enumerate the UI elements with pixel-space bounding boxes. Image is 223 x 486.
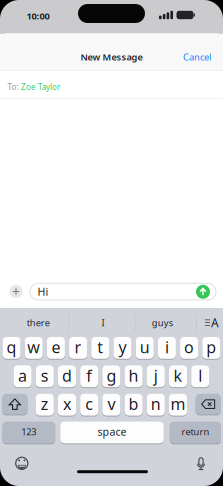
staticText: j: [154, 365, 158, 386]
staticText: t: [97, 336, 103, 358]
button[interactable]: j: [147, 365, 165, 388]
staticText: p: [206, 336, 216, 358]
button[interactable]: s: [36, 365, 54, 388]
staticText: n: [151, 393, 161, 414]
staticText: u: [140, 336, 150, 358]
button[interactable]: e: [47, 336, 65, 359]
button[interactable]: q: [2, 336, 20, 359]
button[interactable]: r: [69, 336, 87, 359]
staticText: m: [170, 393, 185, 414]
button[interactable]: x: [58, 393, 76, 416]
button[interactable]: 123: [2, 421, 55, 444]
button[interactable]: Hi: [30, 283, 216, 300]
staticText: d: [62, 365, 72, 386]
button[interactable]: t: [91, 336, 109, 359]
staticText: s: [41, 365, 49, 386]
button[interactable]: v: [102, 393, 120, 416]
staticText: r: [75, 336, 82, 358]
button[interactable]: Cancel: [183, 51, 211, 63]
button[interactable]: w: [25, 336, 43, 359]
staticText: there: [27, 316, 50, 329]
button[interactable]: Shift: [2, 393, 27, 415]
staticText: y: [118, 336, 126, 358]
button[interactable]: h: [125, 365, 143, 388]
button[interactable]: l: [191, 365, 209, 388]
button[interactable]: o: [180, 336, 198, 359]
button[interactable]: p: [202, 336, 220, 359]
button[interactable]: Delete: [196, 393, 221, 415]
staticText: g: [106, 365, 116, 386]
button[interactable]: space: [60, 421, 164, 444]
button[interactable]: i: [158, 336, 176, 359]
button[interactable]: z: [36, 393, 54, 416]
staticText: Cancel: [183, 51, 211, 63]
staticText: New Message: [80, 51, 142, 63]
button[interactable]: n: [147, 393, 165, 416]
button[interactable]: Apps: [9, 285, 23, 298]
button[interactable]: guys: [136, 313, 188, 333]
button[interactable]: a: [14, 365, 32, 388]
staticText: v: [107, 393, 115, 414]
staticText: x: [63, 393, 71, 414]
staticText: w: [27, 336, 40, 358]
staticText: guys: [152, 316, 173, 329]
button[interactable]: Dictation: [196, 457, 206, 471]
staticText: b: [129, 393, 139, 414]
button[interactable]: y: [113, 336, 131, 359]
staticText: return: [181, 425, 209, 438]
button[interactable]: there: [8, 313, 68, 333]
button[interactable]: d: [58, 365, 76, 388]
staticText: A: [211, 315, 219, 330]
staticText: 123: [21, 425, 36, 438]
button[interactable]: Emoji: [14, 455, 30, 471]
staticText: 10:00: [26, 10, 49, 22]
staticText: f: [86, 365, 92, 386]
staticText: l: [198, 365, 202, 386]
button[interactable]: Keyboard menu: [205, 315, 219, 330]
button[interactable]: u: [136, 336, 154, 359]
button[interactable]: g: [102, 365, 120, 388]
staticText: z: [41, 393, 49, 414]
button[interactable]: Zoe Taylor: [21, 82, 60, 92]
staticText: q: [6, 336, 16, 358]
staticText: o: [184, 336, 194, 358]
staticText: Zoe Taylor: [21, 82, 60, 92]
button[interactable]: b: [125, 393, 143, 416]
staticText: Hi: [37, 284, 48, 299]
button[interactable]: Send: [196, 285, 210, 299]
button[interactable]: I: [75, 313, 131, 333]
staticText: To:: [7, 82, 18, 92]
button[interactable]: k: [169, 365, 187, 388]
staticText: h: [129, 365, 139, 386]
staticText: space: [97, 425, 126, 439]
staticText: i: [165, 336, 169, 358]
staticText: c: [85, 393, 93, 414]
staticText: I: [101, 316, 104, 329]
staticText: e: [51, 336, 60, 358]
button[interactable]: return: [170, 421, 221, 444]
button[interactable]: f: [80, 365, 98, 388]
staticText: a: [18, 365, 27, 386]
staticText: k: [173, 365, 182, 386]
button[interactable]: m: [169, 393, 187, 416]
button[interactable]: c: [80, 393, 98, 416]
